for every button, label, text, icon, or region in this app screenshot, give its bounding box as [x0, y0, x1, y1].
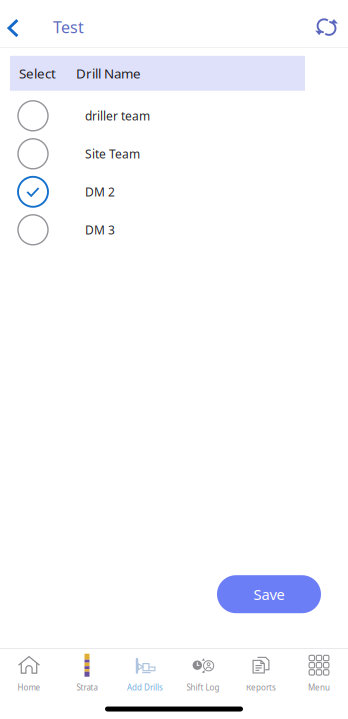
staticText: Strata [76, 682, 97, 693]
button[interactable]: Shift Log [174, 647, 232, 697]
button[interactable]: Strata [58, 647, 116, 697]
button[interactable]: Menu [290, 647, 348, 697]
button[interactable]: Refresh [314, 0, 348, 47]
button[interactable]: DM 2 [0, 173, 348, 211]
button[interactable]: Home [0, 647, 58, 697]
staticText: Test [53, 16, 84, 38]
button[interactable]: Site Team [0, 135, 348, 173]
button[interactable]: Add Drills [116, 647, 174, 697]
staticText: Menu [308, 682, 330, 693]
staticText: Add Drills [127, 682, 163, 693]
button[interactable]: Save [217, 575, 321, 613]
staticText: Reports [246, 682, 276, 693]
button[interactable]: driller team [0, 97, 348, 135]
button[interactable]: DM 3 [0, 211, 348, 249]
button[interactable]: Test [53, 0, 84, 47]
staticText: DM 3 [85, 222, 115, 238]
staticText: DM 2 [85, 184, 115, 200]
staticText: Drill Name [76, 64, 141, 82]
staticText: Save [253, 584, 284, 604]
staticText: Shift Log [186, 682, 219, 693]
staticText: driller team [85, 108, 150, 124]
button[interactable]: Reports [232, 647, 290, 697]
staticText: Select [19, 64, 56, 82]
button[interactable]: Back [0, 0, 53, 47]
staticText: Home [17, 682, 40, 693]
staticText: Site Team [85, 146, 140, 162]
